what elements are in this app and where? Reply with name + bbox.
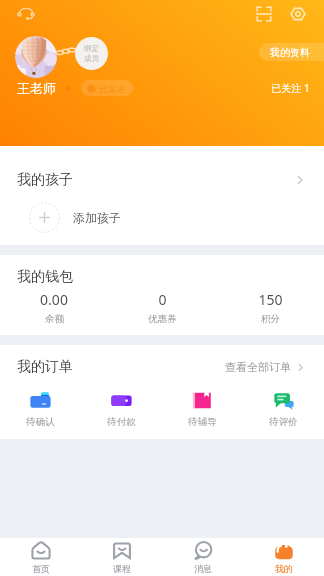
button[interactable]: 添加孩子 (29, 195, 324, 239)
button[interactable]: 绑定 (75, 37, 108, 70)
staticText: 绑定 (84, 44, 99, 53)
staticText: 待评价 (269, 416, 298, 428)
button[interactable]: 待付款 (81, 384, 162, 432)
staticText: 0.00 (40, 290, 68, 309)
button[interactable]: Settings (288, 4, 308, 24)
button[interactable]: 我的资料 (270, 43, 310, 61)
staticText: 已实名 (99, 83, 126, 94)
staticText: 优惠券 (148, 313, 177, 325)
staticText: 已关注 1 (271, 81, 310, 95)
button[interactable]: 已实名 (87, 80, 126, 96)
button[interactable]: 待评价 (243, 384, 324, 432)
button[interactable]: 查看全部订单 (225, 360, 306, 374)
button[interactable]: 150 (216, 286, 324, 328)
button[interactable]: 待确认 (0, 384, 81, 432)
button[interactable]: 0 (108, 286, 216, 328)
staticText: 首页 (32, 563, 50, 574)
staticText: 我的资料 (270, 46, 310, 59)
staticText: 我的孩子 (17, 171, 73, 189)
staticText: 余额 (45, 313, 64, 325)
button[interactable]: 0.00 (0, 286, 108, 328)
staticText: 我的钱包 (17, 268, 73, 286)
button[interactable]: Scan QR code (254, 4, 274, 24)
staticText: 消息 (194, 563, 212, 574)
staticText: 150 (258, 290, 283, 309)
button[interactable]: Profile avatar (15, 36, 57, 78)
staticText: 0 (158, 290, 167, 309)
staticText: 添加孩子 (73, 210, 121, 225)
button[interactable]: 我的 (243, 538, 324, 576)
staticText: 待辅导 (188, 416, 217, 428)
staticText: 待确认 (26, 416, 55, 428)
button[interactable]: 首页 (0, 538, 81, 576)
staticText: 成员 (84, 54, 99, 63)
button[interactable]: 已关注 1 (271, 81, 310, 95)
button[interactable]: 消息 (162, 538, 243, 576)
staticText: 积分 (261, 313, 280, 325)
button[interactable]: 待辅导 (162, 384, 243, 432)
staticText: 我的订单 (17, 358, 73, 376)
staticText: 查看全部订单 (225, 360, 291, 374)
staticText: 待付款 (107, 416, 136, 428)
staticText: 我的 (275, 563, 293, 574)
button[interactable]: 我的孩子 (0, 157, 324, 203)
button[interactable]: 课程 (81, 538, 162, 576)
button[interactable]: Customer service (16, 4, 36, 24)
staticText: 课程 (113, 563, 131, 574)
staticText: 王老师 (17, 80, 56, 96)
